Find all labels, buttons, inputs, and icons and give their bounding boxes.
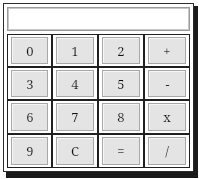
staticText: C xyxy=(71,142,79,160)
staticText: - xyxy=(165,75,170,93)
staticText: 3 xyxy=(26,75,34,93)
button[interactable]: C xyxy=(52,134,98,168)
staticText: 7 xyxy=(71,108,79,126)
staticText: 2 xyxy=(117,42,125,60)
button[interactable]: 5 xyxy=(98,67,144,100)
staticText: / xyxy=(165,142,169,160)
button[interactable]: 1 xyxy=(52,34,98,67)
staticText: 9 xyxy=(26,142,34,160)
staticText: = xyxy=(117,142,125,160)
button[interactable]: / xyxy=(144,134,190,168)
button[interactable]: 4 xyxy=(52,67,98,100)
button[interactable]: 0 xyxy=(7,34,52,67)
button[interactable]: - xyxy=(144,67,190,100)
staticText: 6 xyxy=(26,108,34,126)
button[interactable]: 9 xyxy=(7,134,52,168)
staticText: + xyxy=(163,42,171,60)
button[interactable]: 8 xyxy=(98,100,144,134)
staticText: x xyxy=(163,108,171,126)
button[interactable]: 7 xyxy=(52,100,98,134)
staticText: 1 xyxy=(71,42,79,60)
staticText: 8 xyxy=(117,108,125,126)
button[interactable]: 3 xyxy=(7,67,52,100)
button[interactable]: 2 xyxy=(98,34,144,67)
button[interactable]: = xyxy=(98,134,144,168)
button[interactable]: Display xyxy=(7,7,190,31)
button[interactable]: 6 xyxy=(7,100,52,134)
button[interactable]: + xyxy=(144,34,190,67)
staticText: 5 xyxy=(117,75,125,93)
button[interactable]: x xyxy=(144,100,190,134)
staticText: 4 xyxy=(71,75,79,93)
staticText: 0 xyxy=(26,42,34,60)
